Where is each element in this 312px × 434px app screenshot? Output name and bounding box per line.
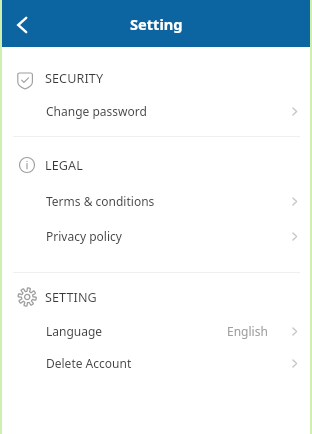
button[interactable]: Privacy policy [0, 221, 312, 251]
button[interactable]: Language [0, 316, 312, 346]
staticText: SETTING [45, 289, 97, 306]
button[interactable]: Terms & conditions [0, 186, 312, 216]
staticText: Change password [46, 103, 147, 119]
button[interactable]: Delete Account [0, 348, 312, 378]
staticText: Setting [130, 14, 183, 34]
staticText: SECURITY [45, 70, 104, 87]
staticText: Terms & conditions [46, 193, 155, 209]
button[interactable]: Back [0, 3, 42, 45]
staticText: LEGAL [45, 157, 83, 174]
staticText: Language [46, 323, 103, 339]
staticText: Delete Account [46, 355, 132, 371]
staticText: Privacy policy [46, 228, 122, 244]
staticText: English [227, 323, 268, 339]
button[interactable]: Change password [0, 96, 312, 126]
